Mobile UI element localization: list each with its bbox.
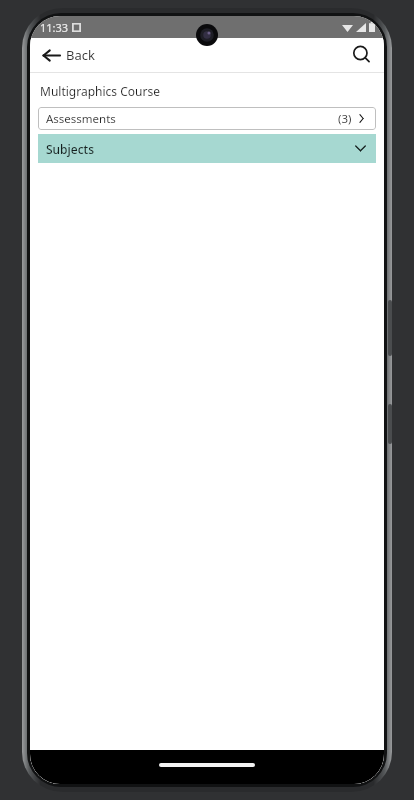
button[interactable]: Subjects <box>38 134 376 163</box>
staticText: 11:33 <box>40 20 69 35</box>
staticText: Assessments <box>46 111 116 127</box>
staticText: Multigraphics Course <box>40 83 160 99</box>
staticText: Back <box>66 46 95 64</box>
staticText: Subjects <box>46 141 95 157</box>
staticText: (3) <box>338 111 352 127</box>
button[interactable]: Back <box>30 38 107 72</box>
button[interactable]: Search <box>340 38 384 72</box>
button[interactable]: Assessments <box>38 107 376 130</box>
